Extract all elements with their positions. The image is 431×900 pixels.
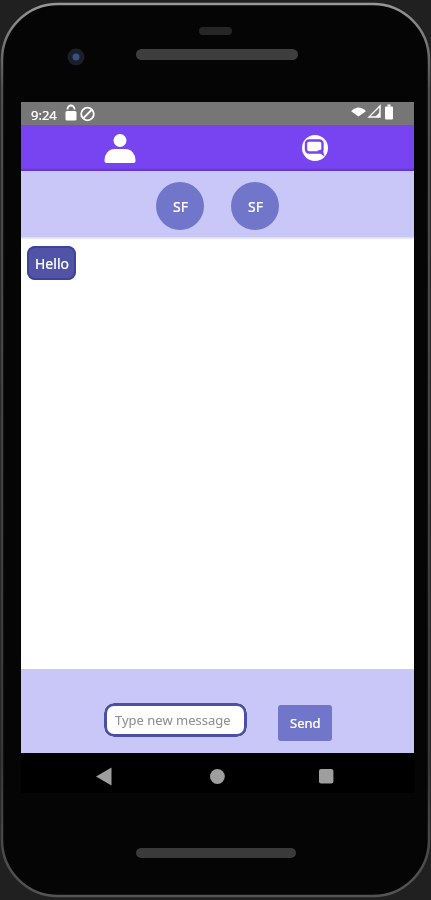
staticText: 9:24 bbox=[31, 106, 57, 124]
staticText: SF bbox=[173, 197, 188, 216]
button[interactable] bbox=[289, 753, 364, 790]
staticText: Hello bbox=[35, 254, 69, 273]
button[interactable] bbox=[80, 753, 155, 790]
button[interactable]: Type new message bbox=[104, 703, 247, 737]
button[interactable] bbox=[293, 125, 337, 170]
button[interactable] bbox=[180, 753, 255, 790]
staticText: Type new message bbox=[115, 711, 231, 729]
staticText: Send bbox=[290, 714, 321, 732]
button[interactable]: Hello bbox=[27, 246, 76, 280]
button[interactable]: Send bbox=[278, 705, 332, 741]
button[interactable]: SF bbox=[156, 182, 204, 230]
button[interactable] bbox=[98, 125, 142, 170]
staticText: SF bbox=[248, 197, 263, 216]
button[interactable]: SF bbox=[231, 182, 279, 230]
